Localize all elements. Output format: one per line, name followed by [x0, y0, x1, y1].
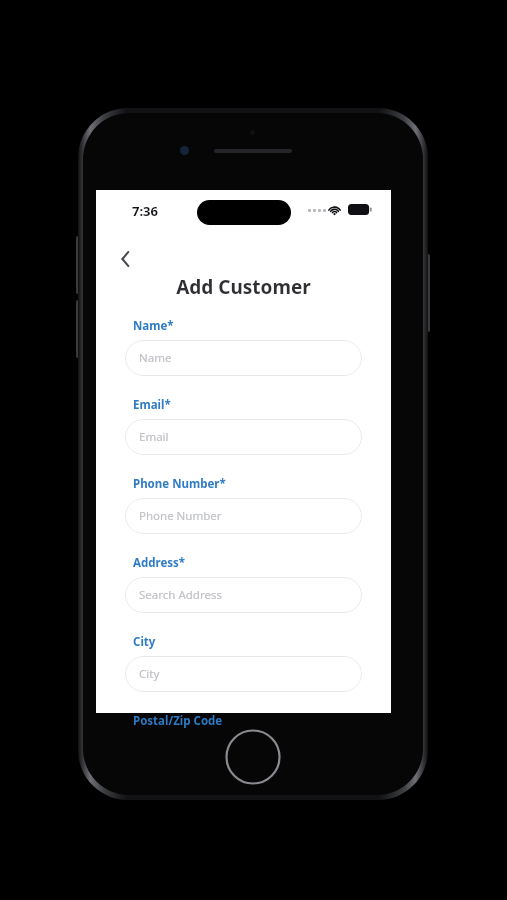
staticText: Postal/Zip Code	[133, 713, 223, 729]
staticText: Name	[139, 350, 172, 366]
staticText: Email	[139, 429, 169, 445]
button[interactable]: City	[125, 656, 362, 692]
staticText: Search Address	[139, 587, 222, 603]
staticText: City	[139, 666, 160, 682]
staticText: City	[133, 634, 156, 650]
button[interactable]: Name	[125, 340, 362, 376]
button[interactable]: Search Address	[125, 577, 362, 613]
staticText: Phone Number*	[133, 476, 226, 492]
button[interactable]: Email	[125, 419, 362, 455]
staticText: Add Customer	[96, 274, 391, 300]
staticText: Phone Number	[139, 508, 222, 524]
button[interactable]: Phone Number	[125, 498, 362, 534]
staticText: Address*	[133, 555, 186, 571]
button[interactable]: Back	[108, 242, 142, 276]
staticText: 7:36	[132, 202, 158, 220]
staticText: Name*	[133, 318, 174, 334]
staticText: Email*	[133, 397, 171, 413]
